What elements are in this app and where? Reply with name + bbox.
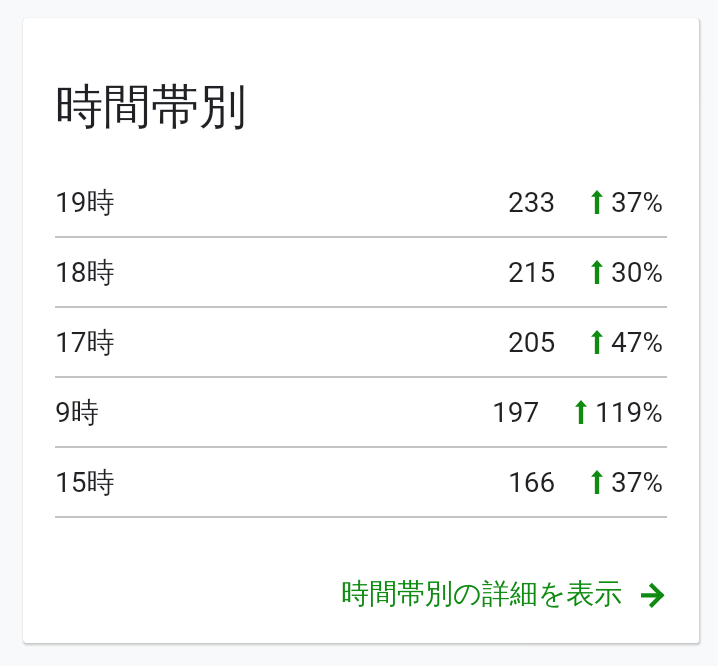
staticText: 17時 [55, 325, 115, 360]
button[interactable]: 15時 [55, 448, 667, 518]
other: 増加 [591, 260, 603, 284]
staticText: 37% [611, 186, 663, 219]
staticText: 時間帯別の詳細を表示 [341, 576, 623, 611]
staticText: 205 [508, 326, 556, 359]
staticText: 30% [611, 256, 663, 289]
button[interactable]: 時間帯別の詳細を表示 [55, 576, 667, 643]
other: 増加 [591, 190, 603, 214]
staticText: 197 [492, 396, 540, 429]
button[interactable]: 19時 [55, 168, 667, 238]
staticText: 時間帯別 [55, 77, 247, 137]
staticText: 47% [611, 326, 663, 359]
other: 増加 [575, 400, 587, 424]
staticText: 119% [595, 396, 663, 429]
button[interactable]: 17時 [55, 308, 667, 378]
staticText: 9時 [55, 395, 99, 430]
staticText: 166 [508, 466, 556, 499]
staticText: 215 [508, 256, 556, 289]
staticText: 233 [508, 186, 556, 219]
other: 詳細を表示 [641, 582, 665, 606]
staticText: 19時 [55, 185, 115, 220]
other: 増加 [591, 330, 603, 354]
staticText: 18時 [55, 255, 115, 290]
button[interactable]: 9時 [55, 378, 667, 448]
staticText: 15時 [55, 465, 115, 500]
staticText: 37% [611, 466, 663, 499]
button[interactable]: 18時 [55, 238, 667, 308]
other: 増加 [591, 470, 603, 494]
